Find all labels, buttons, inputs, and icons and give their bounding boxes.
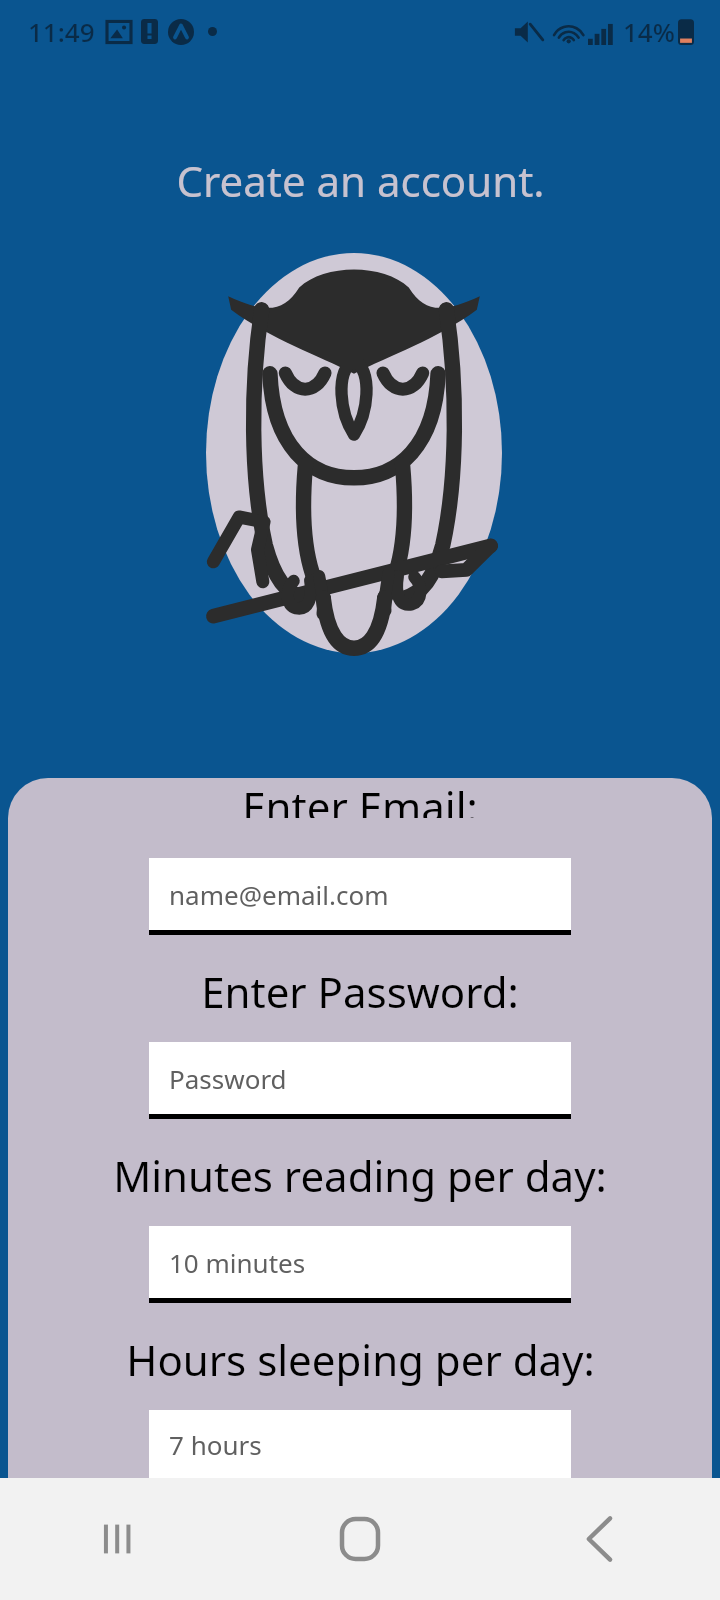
- staticText: 10 minutes: [169, 1245, 306, 1280]
- staticText: Minutes reading per day:: [113, 1147, 607, 1204]
- staticText: name@email.com: [169, 877, 389, 912]
- button[interactable]: name@email.com: [149, 858, 571, 935]
- staticText: Enter Password:: [201, 963, 519, 1020]
- staticText: Hours sleeping per day:: [126, 1331, 595, 1388]
- staticText: 11:49: [28, 14, 95, 49]
- button[interactable]: Home: [240, 1478, 480, 1600]
- button[interactable]: Password: [149, 1042, 571, 1119]
- staticText: 7 hours: [169, 1427, 262, 1462]
- staticText: Create an account.: [176, 152, 545, 209]
- other: Owl logo: [206, 253, 502, 653]
- button[interactable]: Back: [480, 1478, 720, 1600]
- button[interactable]: 7 hours: [149, 1410, 571, 1478]
- button[interactable]: 10 minutes: [149, 1226, 571, 1303]
- staticText: Enter Email:: [242, 778, 478, 818]
- staticText: Password: [169, 1061, 287, 1096]
- staticText: 14%: [623, 14, 675, 49]
- button[interactable]: Recent apps: [0, 1478, 240, 1600]
